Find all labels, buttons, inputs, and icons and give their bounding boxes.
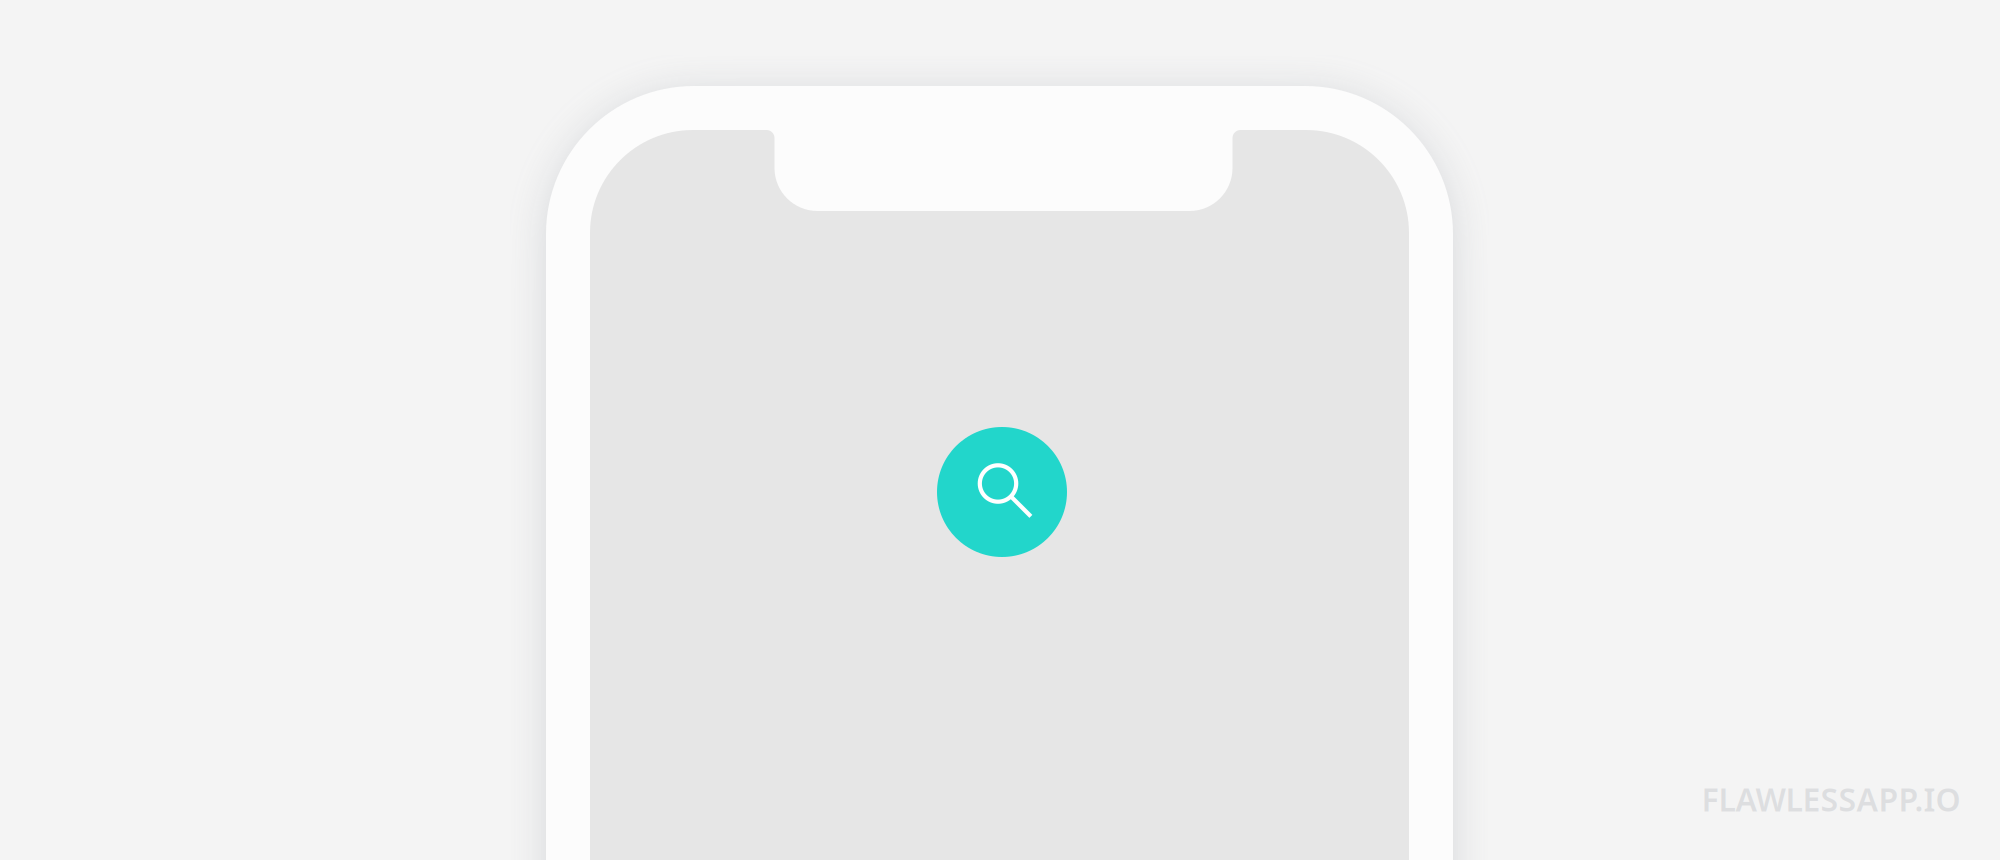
staticText: FLAWLESSAPP.IO xyxy=(1701,778,1960,820)
button[interactable]: Search xyxy=(937,427,1067,557)
